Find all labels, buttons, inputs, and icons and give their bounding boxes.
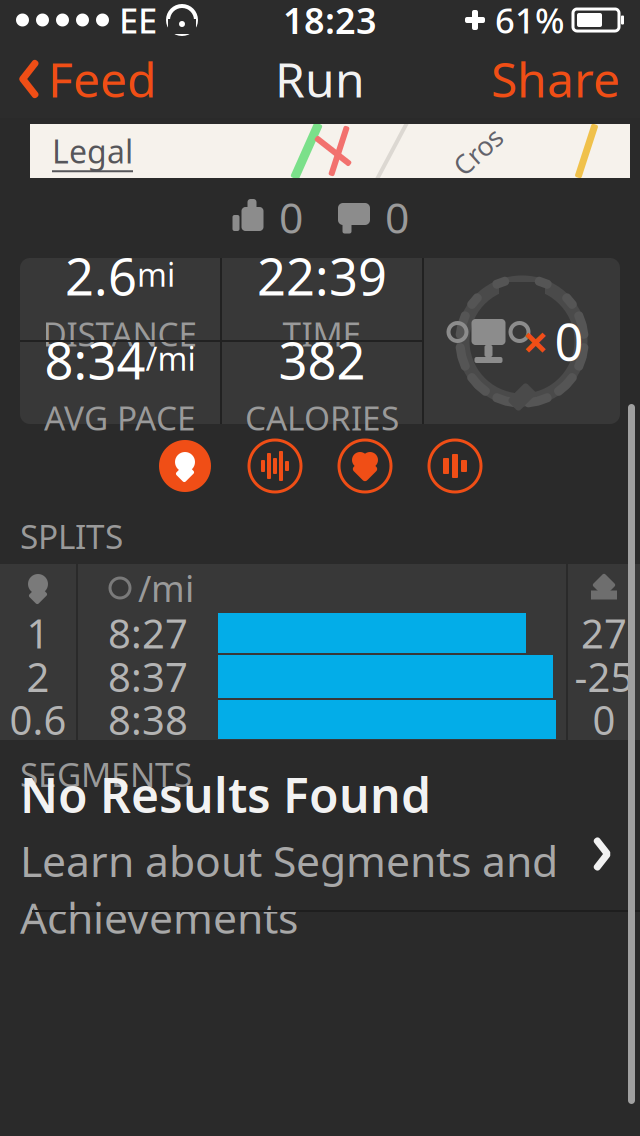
staticText: mi <box>137 253 175 296</box>
staticText: 382 <box>278 326 365 393</box>
button[interactable]: Share <box>471 40 640 118</box>
staticText: SEGMENTS <box>20 752 192 796</box>
button[interactable]: 0 <box>231 189 303 245</box>
staticText: Share <box>491 47 620 111</box>
staticText: 0.6 <box>9 693 66 746</box>
staticText: SPLITS <box>20 514 123 558</box>
staticText: Run <box>275 47 365 111</box>
staticText: TIME <box>282 311 361 356</box>
staticText: 61% <box>495 0 565 43</box>
staticText: 27 <box>581 606 627 659</box>
staticText: 8:37 <box>108 650 188 703</box>
staticText: -25 <box>574 650 633 703</box>
staticText: No Results Found <box>20 762 431 826</box>
button[interactable]: Feed <box>0 40 175 118</box>
staticText: 22:39 <box>257 242 387 309</box>
staticText: 8:38 <box>108 693 188 746</box>
staticText: Cros <box>450 133 506 169</box>
button[interactable]: Pace analysis <box>247 438 303 494</box>
staticText: CALORIES <box>245 395 399 440</box>
staticText: 2 <box>26 650 49 703</box>
staticText: EE <box>119 0 157 43</box>
staticText: /mi <box>145 337 195 380</box>
button[interactable]: No Results Found <box>0 808 640 922</box>
staticText: DISTANCE <box>42 311 197 356</box>
staticText: Learn about Segments and Achievements <box>20 832 558 945</box>
staticText: 2.6 <box>65 242 137 309</box>
staticText: Feed <box>48 47 157 111</box>
staticText: AVG PACE <box>44 395 196 440</box>
staticText: 18:23 <box>283 0 377 44</box>
staticText: × <box>522 311 548 371</box>
button[interactable]: Splits chart <box>427 438 483 494</box>
button[interactable]: Heart rate <box>337 438 393 494</box>
button[interactable]: Map <box>157 438 213 494</box>
staticText: 0 <box>279 189 303 245</box>
staticText: 8:34 <box>44 326 145 393</box>
button[interactable]: 0 <box>337 189 409 245</box>
staticText: /mi <box>138 564 194 612</box>
staticText: 0 <box>385 189 409 245</box>
staticText: 0 <box>554 307 583 375</box>
staticText: Legal <box>52 130 133 172</box>
staticText: 8:27 <box>108 606 188 659</box>
staticText: 0 <box>592 693 615 746</box>
staticText: 1 <box>26 606 49 659</box>
